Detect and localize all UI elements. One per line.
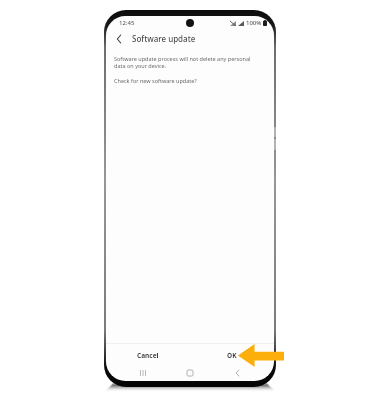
staticText: 12:45 xyxy=(119,19,135,27)
button[interactable]: Recent apps xyxy=(136,367,150,378)
staticText: Check for new software update? xyxy=(114,77,197,84)
staticText: Software update xyxy=(132,33,196,44)
staticText: OK xyxy=(227,351,237,360)
button[interactable]: Navigate up xyxy=(111,31,127,47)
button[interactable]: Cancel xyxy=(106,344,190,367)
button[interactable]: OK xyxy=(190,344,274,367)
staticText: 100% xyxy=(246,19,262,27)
staticText: Cancel xyxy=(137,351,159,360)
staticText: Software update process will not delete … xyxy=(114,55,260,69)
button[interactable]: Back xyxy=(230,367,244,378)
button[interactable]: Home xyxy=(183,367,197,378)
